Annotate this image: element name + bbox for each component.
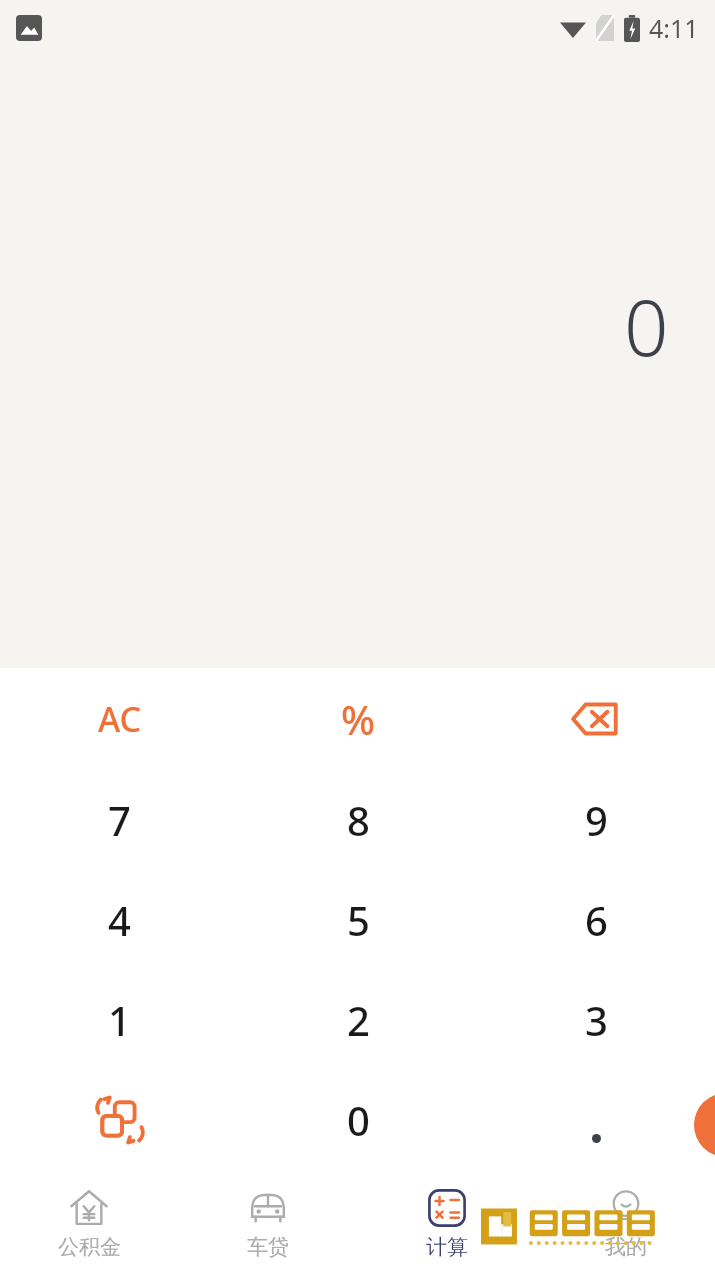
button[interactable]: 车贷 [178,1170,357,1275]
button[interactable]: 8 [239,769,477,870]
staticText: % [341,692,376,746]
button[interactable]: 4 [0,870,239,970]
staticText: 6 [585,893,608,947]
staticText: 3 [585,993,608,1047]
button[interactable]: 3 [477,970,715,1070]
button[interactable]: Equals [694,1093,715,1157]
staticText: 车贷 [247,1234,289,1260]
button[interactable]: 公积金 [0,1170,178,1275]
staticText: 公积金 [58,1234,121,1260]
staticText: 5 [347,893,370,947]
button[interactable]: 6 [477,870,715,970]
staticText: 1 [108,993,131,1047]
button[interactable]: % [239,668,477,769]
button[interactable]: AC [0,668,239,769]
button[interactable]: 0 [239,1070,477,1170]
staticText: 9 [585,793,608,847]
staticText: AC [98,696,142,742]
button[interactable]: 计算 [357,1170,536,1275]
button[interactable]: Backspace [477,668,715,769]
button[interactable] [477,1070,715,1170]
button[interactable]: 9 [477,769,715,870]
button[interactable]: Convert [0,1070,239,1170]
staticText: 4 [108,893,131,947]
staticText: 计算 [426,1234,468,1260]
button[interactable]: 1 [0,970,239,1070]
staticText: 2 [347,993,370,1047]
staticText: 4:11 [649,11,699,45]
staticText: 0 [624,273,669,379]
button[interactable]: 5 [239,870,477,970]
staticText: 我的 [605,1234,647,1260]
staticText: 8 [347,793,370,847]
staticText: 7 [108,793,131,847]
button[interactable]: 7 [0,769,239,870]
staticText: 0 [347,1093,370,1147]
button[interactable]: 我的 [536,1170,715,1275]
button[interactable]: 2 [239,970,477,1070]
